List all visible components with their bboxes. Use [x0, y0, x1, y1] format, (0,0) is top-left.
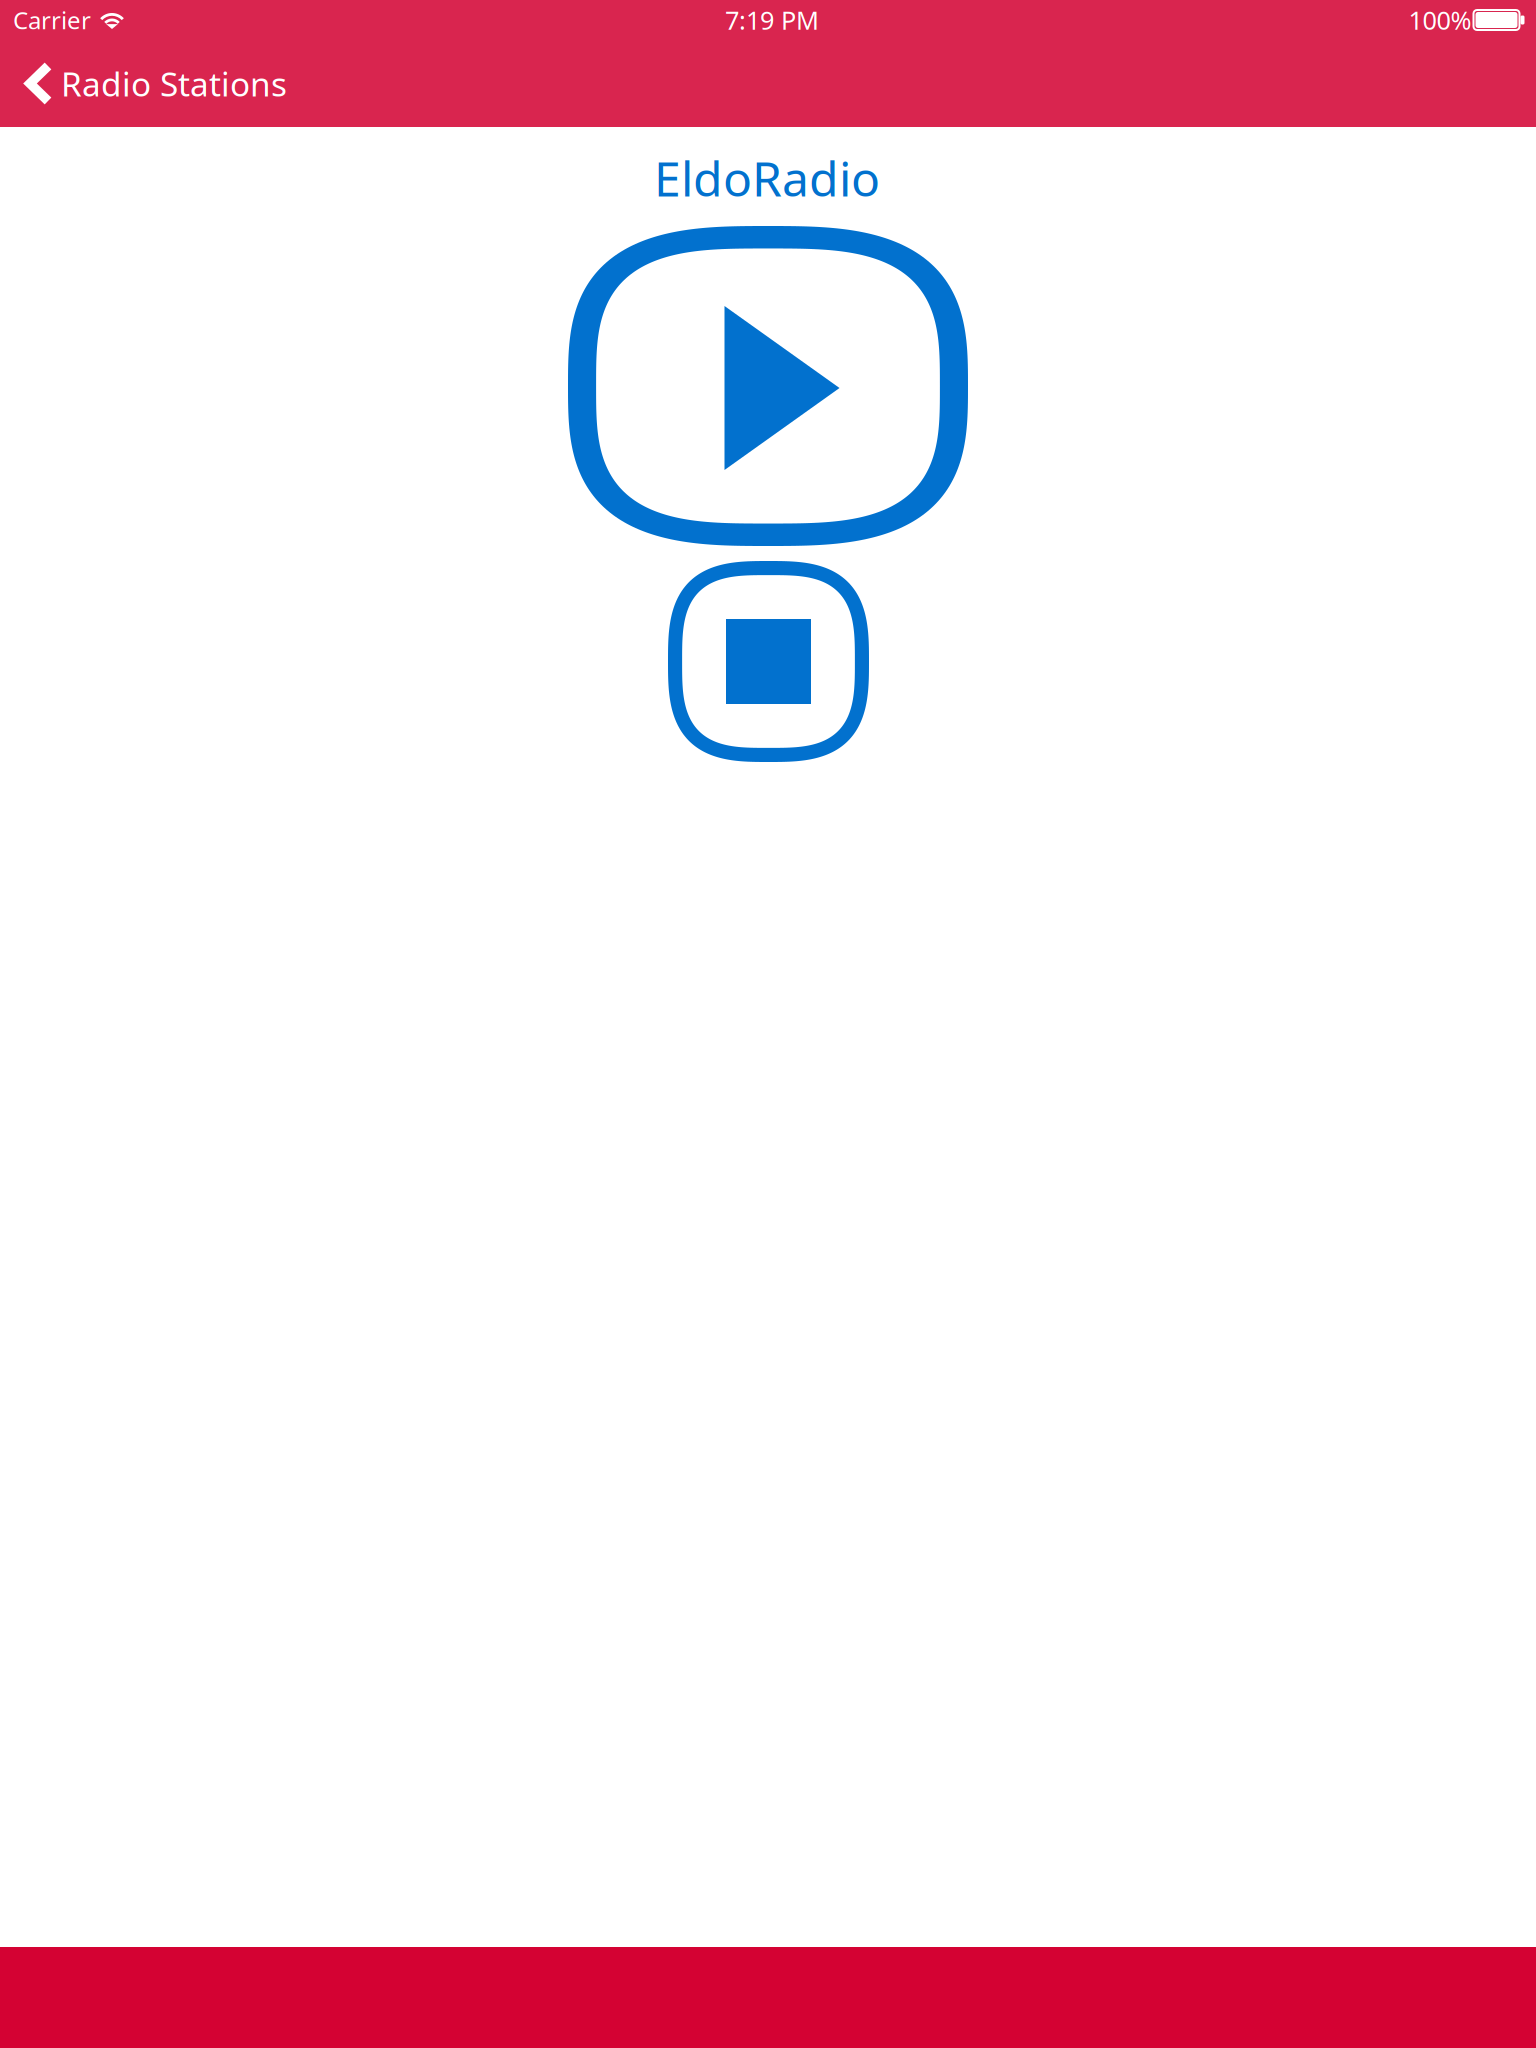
button[interactable]: Play — [568, 226, 968, 546]
staticText: 100% — [1408, 3, 1471, 37]
button[interactable]: Stop — [668, 561, 869, 762]
staticText: Radio Stations — [61, 61, 287, 106]
staticText: EldoRadio — [654, 146, 880, 210]
staticText: 7:19 PM — [725, 3, 819, 37]
staticText: Carrier — [13, 4, 91, 36]
button[interactable]: Radio Stations — [0, 40, 305, 127]
